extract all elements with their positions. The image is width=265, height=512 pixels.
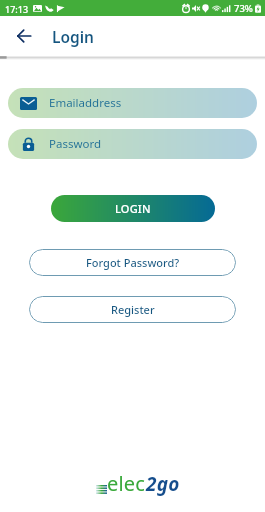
button[interactable]: Back bbox=[4, 16, 44, 56]
staticText: elec bbox=[107, 470, 146, 497]
staticText: LOGIN bbox=[115, 201, 151, 216]
staticText: Login bbox=[52, 26, 95, 47]
staticText: 2go bbox=[146, 471, 180, 497]
staticText: Register bbox=[111, 302, 155, 317]
staticText: 17:13 bbox=[5, 3, 29, 15]
button[interactable]: LOGIN bbox=[51, 195, 215, 222]
button[interactable]: Password bbox=[8, 129, 257, 159]
button[interactable]: Emailaddress bbox=[8, 88, 257, 118]
staticText: 73% bbox=[234, 2, 253, 15]
button[interactable]: Forgot Password? bbox=[29, 249, 236, 276]
button[interactable]: Register bbox=[29, 296, 236, 323]
staticText: Emailaddress bbox=[49, 95, 122, 111]
staticText: Password bbox=[49, 136, 102, 152]
staticText: Forgot Password? bbox=[86, 255, 180, 270]
